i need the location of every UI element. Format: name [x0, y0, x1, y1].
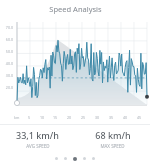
- staticText: 30.0: [5, 73, 13, 78]
- button[interactable]: 33,1 km/h: [0, 125, 75, 152]
- button[interactable]: 70.0: [0, 17, 150, 123]
- staticText: 60.0: [5, 37, 13, 42]
- staticText: 70.0: [5, 25, 13, 30]
- staticText: 30: [95, 115, 100, 120]
- button[interactable]: Page 2: [64, 157, 67, 160]
- staticText: 5: [28, 115, 31, 120]
- staticText: Speed Analysis: [49, 4, 102, 14]
- staticText: 20.0: [5, 85, 13, 90]
- staticText: 25: [81, 115, 86, 120]
- staticText: 33,1 km/h: [16, 129, 59, 141]
- button[interactable]: Page 5: [92, 157, 95, 160]
- button[interactable]: Page 3: [73, 157, 77, 161]
- staticText: 10: [40, 115, 45, 120]
- staticText: km: [14, 115, 20, 120]
- staticText: 40.0: [5, 61, 13, 66]
- staticText: 45: [137, 115, 142, 120]
- staticText: MAX SPEED: [100, 143, 125, 149]
- button[interactable]: Page 4: [83, 157, 86, 160]
- button[interactable]: 68 km/h: [75, 125, 150, 152]
- button[interactable]: Page 1: [55, 157, 58, 160]
- staticText: 20: [67, 115, 72, 120]
- staticText: 15: [53, 115, 58, 120]
- staticText: 35: [109, 115, 114, 120]
- staticText: AVG SPEED: [26, 143, 50, 149]
- staticText: 40: [123, 115, 128, 120]
- staticText: 50.0: [5, 49, 13, 54]
- staticText: 68 km/h: [95, 129, 131, 141]
